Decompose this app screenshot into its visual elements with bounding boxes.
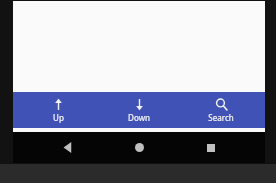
- staticText: Down: [128, 112, 150, 123]
- button[interactable]: Back: [51, 132, 85, 163]
- button[interactable]: Search: [184, 92, 258, 128]
- button[interactable]: Recents: [194, 132, 228, 163]
- button[interactable]: Up: [21, 92, 95, 128]
- button[interactable]: Home: [122, 132, 156, 163]
- button[interactable]: Down: [102, 92, 176, 128]
- staticText: Search: [208, 112, 234, 123]
- staticText: Up: [53, 112, 64, 123]
